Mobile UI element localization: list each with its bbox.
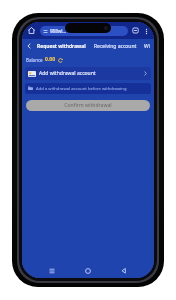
button[interactable]: Refresh balance — [57, 57, 63, 63]
button[interactable]: With — [143, 42, 152, 51]
staticText: Add a withdrawal account before withdraw… — [36, 86, 127, 92]
button[interactable]: Confirm withdrawal — [26, 100, 150, 111]
button[interactable]: Home — [82, 265, 94, 277]
button[interactable]: Recent apps — [46, 265, 58, 277]
button[interactable]: Request withdrawal — [35, 42, 88, 51]
staticText: Confirm withdrawal — [64, 102, 112, 109]
button[interactable]: Receiving account — [92, 42, 139, 51]
button[interactable]: More options — [141, 26, 151, 36]
button[interactable]: Back — [24, 41, 34, 51]
button[interactable]: Back — [118, 265, 130, 277]
staticText: With — [144, 43, 151, 50]
staticText: Balance — [26, 57, 43, 63]
button[interactable]: 988wi… — [40, 26, 128, 36]
button[interactable]: Home — [25, 24, 38, 37]
staticText: 0.00 — [45, 56, 55, 63]
staticText: Request withdrawal — [37, 43, 86, 50]
staticText: Add withdrawal account — [39, 70, 96, 77]
button[interactable]: Add withdrawal account — [25, 67, 151, 80]
button[interactable]: Tabs — [130, 25, 141, 36]
staticText: Receiving account — [94, 43, 137, 50]
staticText: 988wi… — [50, 28, 67, 34]
